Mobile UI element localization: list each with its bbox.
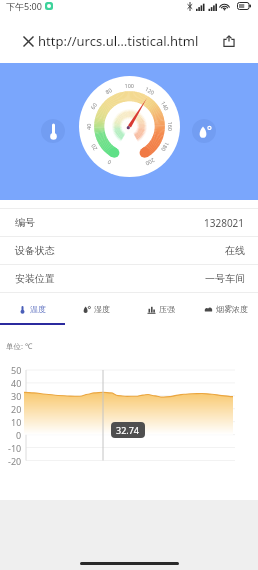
- staticText: 湿度: [94, 304, 110, 314]
- staticText: 0: [16, 429, 22, 441]
- staticText: 压强: [159, 304, 175, 314]
- button[interactable]: Close: [14, 27, 42, 55]
- button[interactable]: 安装位置: [0, 265, 258, 292]
- button[interactable]: 设备状态: [0, 237, 258, 264]
- staticText: 下午5:00: [6, 0, 42, 12]
- staticText: 一号车间: [205, 272, 245, 285]
- button[interactable]: 烟雾浓度: [193, 293, 258, 325]
- button[interactable]: 压强: [128, 293, 193, 325]
- staticText: 设备状态: [15, 244, 55, 257]
- button[interactable]: 编号: [0, 209, 258, 236]
- staticText: -10: [8, 442, 22, 454]
- button[interactable]: Share: [217, 29, 241, 53]
- staticText: -20: [8, 455, 22, 467]
- staticText: 烟雾浓度: [216, 304, 248, 314]
- staticText: 50: [11, 364, 22, 376]
- button[interactable]: 湿度: [64, 293, 128, 325]
- staticText: 32.74: [116, 424, 140, 436]
- staticText: 20: [11, 403, 22, 415]
- staticText: 温度: [30, 304, 46, 314]
- staticText: 单位: ℃: [6, 341, 33, 351]
- staticText: 编号: [15, 216, 35, 229]
- staticText: 1328021: [204, 216, 245, 230]
- button[interactable]: Temperature: [41, 119, 65, 143]
- button[interactable]: 温度: [0, 293, 64, 325]
- staticText: 30: [11, 390, 22, 402]
- button[interactable]: Humidity: [192, 119, 216, 143]
- staticText: 安装位置: [15, 272, 55, 285]
- staticText: 10: [11, 416, 22, 428]
- staticText: 40: [11, 377, 22, 389]
- staticText: http://urcs.ul…tistical.html: [38, 32, 199, 50]
- staticText: 在线: [225, 244, 245, 257]
